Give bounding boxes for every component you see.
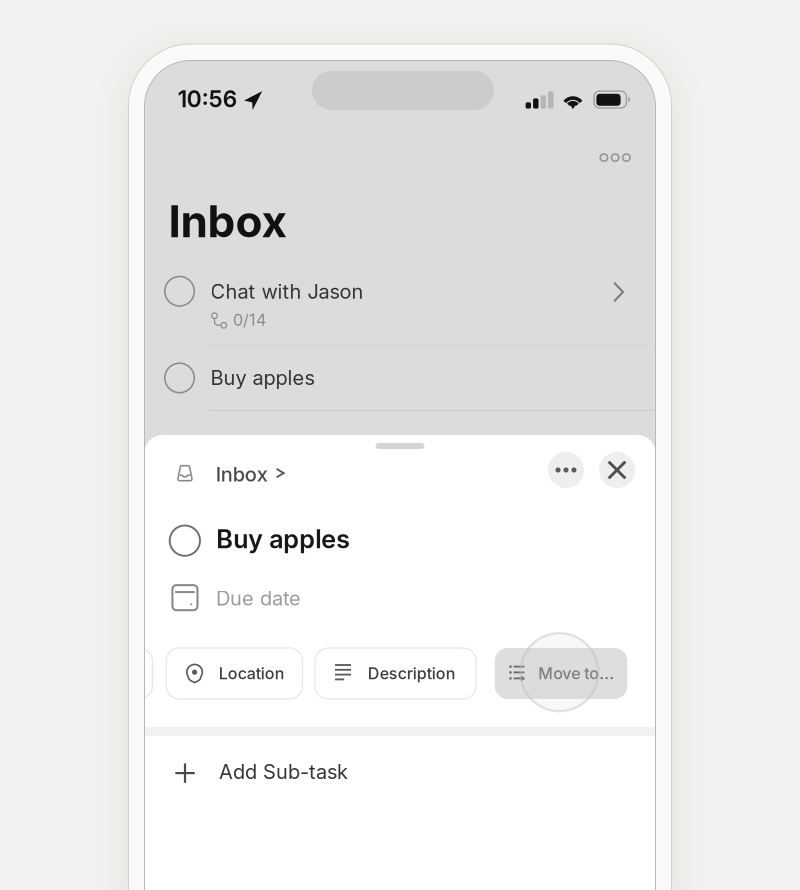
- button[interactable]: Description: [315, 648, 476, 699]
- staticText: Location: [219, 664, 285, 683]
- staticText: Chat with Jason: [210, 280, 363, 303]
- staticText: Inbox: [168, 195, 287, 247]
- staticText: Buy apples: [210, 366, 314, 390]
- button[interactable]: Move to...: [495, 648, 627, 699]
- staticText: 0/14: [233, 310, 266, 329]
- staticText: Inbox: [216, 462, 268, 486]
- staticText: Due date: [216, 586, 301, 610]
- button[interactable]: Buy apples: [144, 344, 655, 410]
- button[interactable]: Inbox: [171, 458, 293, 492]
- button[interactable]: [112, 648, 152, 699]
- button[interactable]: More: [548, 452, 584, 488]
- staticText: Description: [368, 664, 456, 683]
- button[interactable]: Due date: [165, 580, 345, 616]
- button[interactable]: Location: [166, 648, 302, 699]
- staticText: Buy apples: [216, 524, 350, 554]
- button[interactable]: Chat with Jason: [144, 258, 655, 344]
- staticText: Move to...: [538, 664, 614, 683]
- staticText: 10:56: [178, 86, 237, 112]
- button[interactable]: Close: [599, 452, 635, 488]
- button[interactable]: Add Sub-task: [144, 736, 655, 812]
- staticText: Add Sub-task: [219, 760, 348, 784]
- button[interactable]: More options: [576, 135, 636, 181]
